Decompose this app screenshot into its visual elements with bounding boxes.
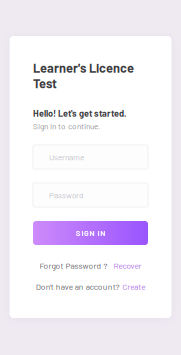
staticText: SIGN IN	[76, 228, 105, 238]
button[interactable]: Username	[33, 145, 148, 169]
staticText: Create	[122, 281, 145, 292]
staticText: Forgot Password ?	[39, 260, 107, 271]
button[interactable]: SIGN IN	[33, 221, 148, 245]
staticText: Recover	[113, 260, 141, 271]
button[interactable]: Forgot Password ?	[33, 260, 148, 271]
button[interactable]: Password	[33, 183, 148, 207]
button[interactable]: Don't have an account?	[33, 281, 148, 292]
staticText: Hello! Let's get started.	[33, 108, 126, 118]
staticText: Password	[49, 190, 83, 200]
staticText: Username	[49, 152, 84, 162]
staticText: Don't have an account?	[36, 281, 120, 292]
staticText: Sign in to continue.	[33, 121, 100, 131]
staticText: Learner's Licence Test	[33, 60, 134, 91]
